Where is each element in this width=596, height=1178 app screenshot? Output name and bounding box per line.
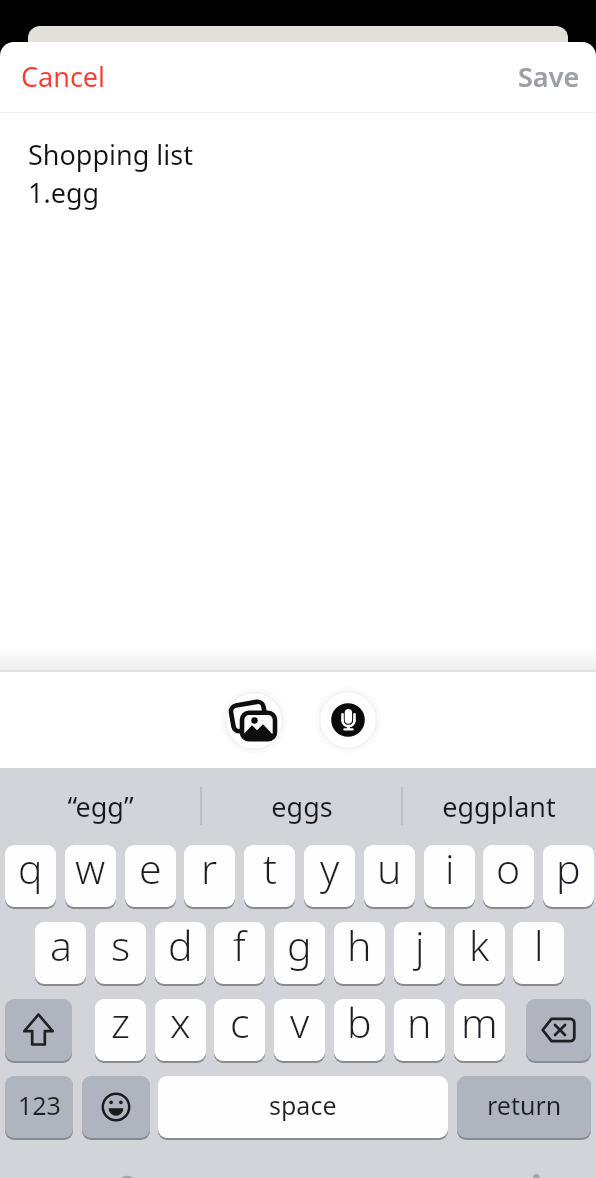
staticText: f	[233, 922, 246, 973]
button[interactable]: g	[274, 922, 325, 984]
button[interactable]: z	[95, 999, 146, 1061]
button[interactable]: 123	[5, 1076, 73, 1138]
button[interactable]: j	[394, 922, 445, 984]
button[interactable]: Save	[502, 42, 596, 110]
staticText: eggplant	[442, 788, 556, 825]
button[interactable]: b	[334, 999, 385, 1061]
staticText: 123	[18, 1088, 61, 1122]
staticText: return	[487, 1088, 562, 1122]
button[interactable]: l	[513, 922, 564, 984]
button[interactable]: c	[214, 999, 265, 1061]
staticText: j	[415, 922, 425, 973]
staticText: d	[168, 922, 193, 973]
staticText: space	[269, 1088, 337, 1122]
staticText: u	[377, 845, 402, 896]
staticText: y	[320, 845, 340, 896]
staticText: v	[290, 999, 310, 1050]
button[interactable]: o	[483, 845, 534, 907]
button[interactable]	[314, 686, 382, 754]
button[interactable]: x	[155, 999, 206, 1061]
staticText: e	[139, 845, 162, 896]
staticText: n	[407, 999, 432, 1050]
button[interactable]: space	[158, 1076, 448, 1138]
button[interactable]: h	[334, 922, 385, 984]
button[interactable]	[526, 999, 591, 1061]
button[interactable]: t	[244, 845, 295, 907]
button[interactable]: r	[184, 845, 235, 907]
button[interactable]	[82, 1076, 150, 1138]
staticText: x	[170, 999, 191, 1050]
staticText: g	[287, 922, 312, 973]
button[interactable]: w	[65, 845, 116, 907]
button[interactable]	[220, 687, 288, 755]
button[interactable]: p	[543, 845, 594, 907]
button[interactable]: eggplant	[401, 772, 596, 840]
staticText: a	[50, 922, 72, 973]
button[interactable]: e	[125, 845, 176, 907]
staticText: r	[201, 845, 218, 896]
button[interactable]: f	[214, 922, 265, 984]
button[interactable]: m	[454, 999, 505, 1061]
staticText: eggs	[271, 788, 333, 825]
button[interactable]: eggs	[201, 772, 402, 840]
button[interactable]: “egg”	[0, 772, 201, 840]
staticText: m	[461, 999, 498, 1050]
button[interactable]: i	[424, 845, 475, 907]
button[interactable]: v	[274, 999, 325, 1061]
staticText: b	[347, 999, 372, 1050]
staticText: w	[75, 845, 106, 896]
button[interactable]: q	[5, 845, 56, 907]
button[interactable]: n	[394, 999, 445, 1061]
button[interactable]: s	[95, 922, 146, 984]
staticText: s	[111, 922, 131, 973]
button[interactable]: k	[454, 922, 505, 984]
button[interactable]: Cancel	[0, 42, 127, 110]
staticText: z	[111, 999, 130, 1050]
staticText: k	[469, 922, 490, 973]
staticText: Save	[518, 58, 580, 95]
button[interactable]: d	[155, 922, 206, 984]
staticText: t	[263, 845, 277, 896]
staticText: Shopping list 1.egg	[28, 136, 193, 211]
staticText: i	[445, 845, 455, 896]
button[interactable]	[5, 999, 72, 1061]
staticText: h	[347, 922, 372, 973]
staticText: q	[18, 845, 43, 896]
button[interactable]: y	[304, 845, 355, 907]
staticText: o	[496, 845, 521, 896]
button[interactable]: return	[457, 1076, 591, 1138]
staticText: l	[534, 922, 544, 973]
button[interactable]: u	[364, 845, 415, 907]
staticText: c	[230, 999, 250, 1050]
staticText: p	[556, 845, 581, 896]
button[interactable]: a	[35, 922, 86, 984]
staticText: “egg”	[67, 788, 134, 825]
staticText: Cancel	[21, 58, 106, 95]
